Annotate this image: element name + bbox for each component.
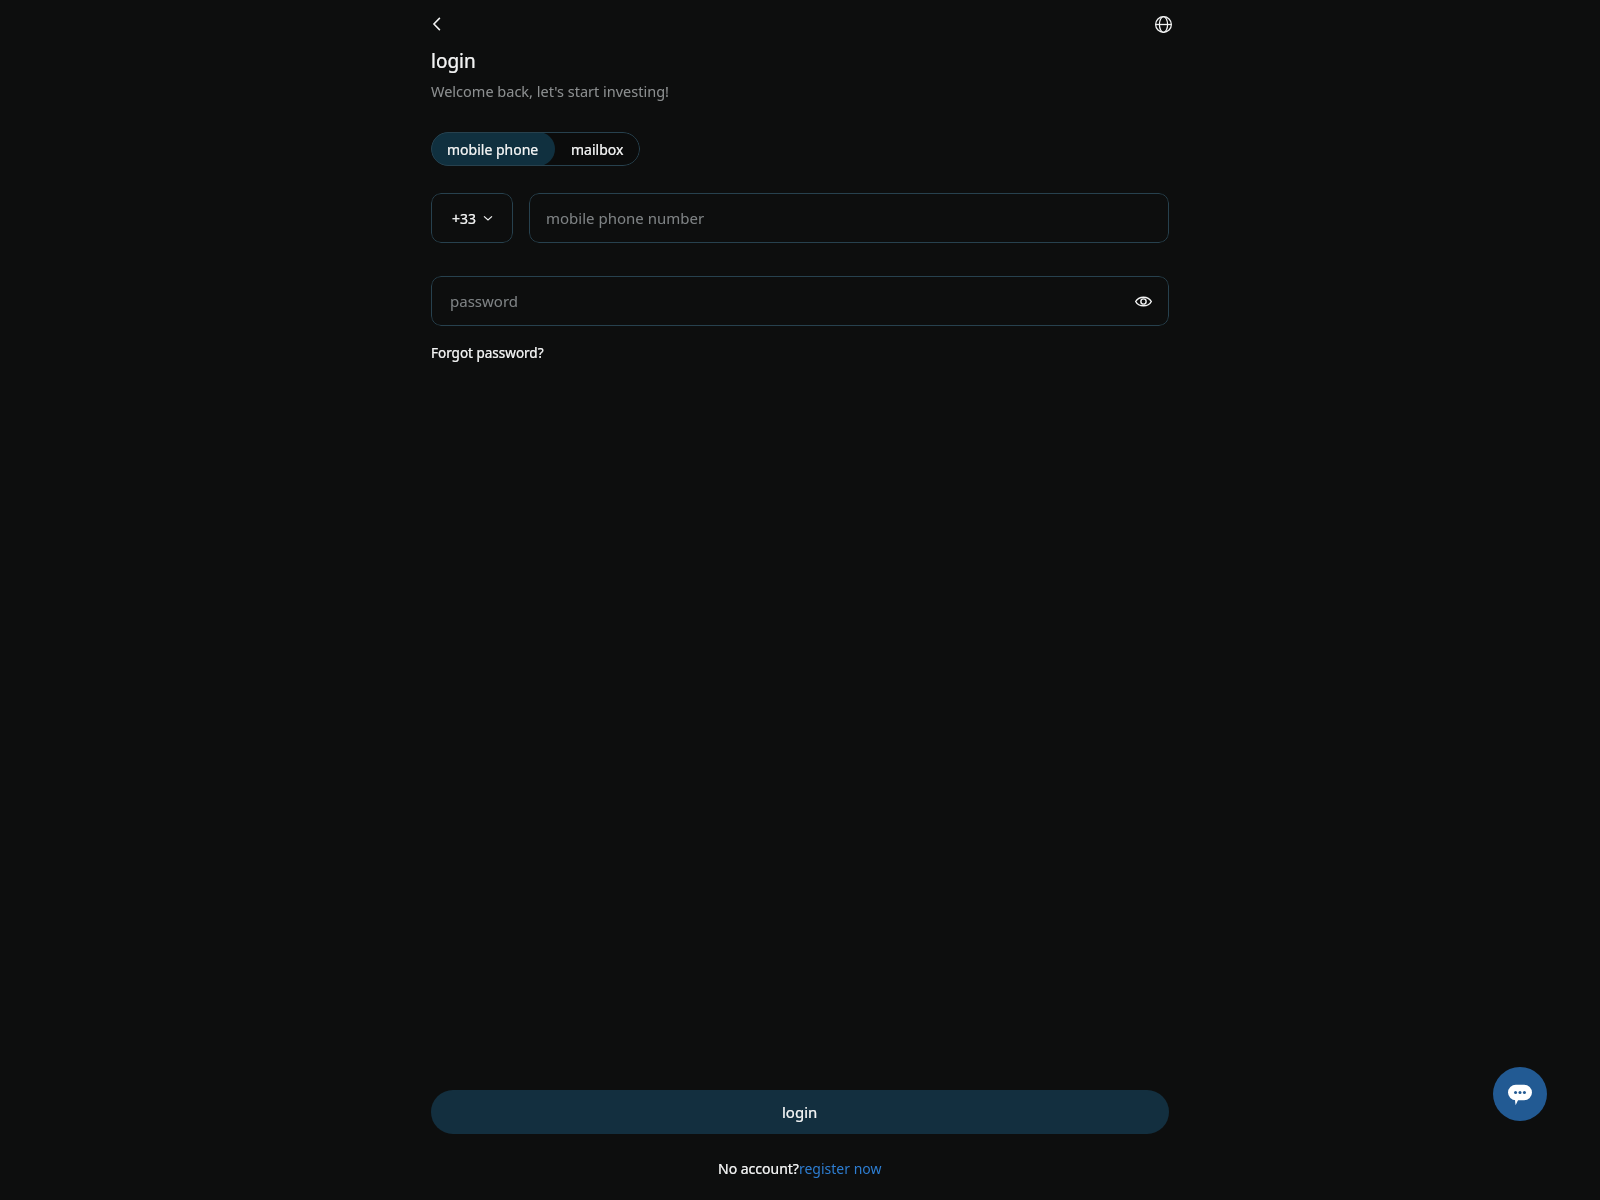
button[interactable]: mobile phone [431,132,555,166]
button[interactable]: mailbox [555,132,640,166]
staticText: mobile phone number [546,208,705,228]
button[interactable]: mobile phone number [529,193,1169,243]
button[interactable]: password [431,276,1169,326]
staticText: login [782,1102,818,1122]
staticText: No account?register now [718,1159,882,1178]
button[interactable]: login [431,1090,1169,1134]
staticText: Welcome back, let's start investing! [431,81,670,101]
button[interactable]: No account?register now [718,1159,882,1178]
button[interactable]: Chat support [1493,1067,1547,1121]
staticText: login [431,48,476,74]
staticText: Forgot password? [431,344,544,362]
staticText: password [450,291,518,311]
button[interactable]: Show password [1129,287,1157,315]
button[interactable]: Forgot password? [431,344,544,362]
button[interactable]: Language [1147,8,1179,40]
staticText: +33 [452,209,477,228]
button[interactable]: +33 [431,193,513,243]
staticText: mailbox [571,140,624,159]
button[interactable]: Back [421,8,453,40]
staticText: mobile phone [447,140,539,159]
